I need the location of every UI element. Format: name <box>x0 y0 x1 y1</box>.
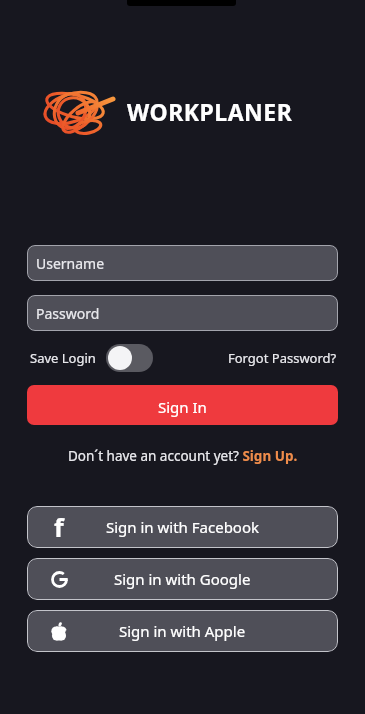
staticText: Username <box>36 254 105 273</box>
button[interactable]: Don´t have an account yet? Sign Up. <box>0 447 365 465</box>
staticText: Sign in with Google <box>114 569 251 589</box>
button[interactable]: f <box>27 506 338 548</box>
button[interactable]: Forgot Password? <box>228 349 337 367</box>
staticText: Password <box>36 304 100 323</box>
button[interactable]: Sign In <box>27 385 338 425</box>
staticText: Sign in with Facebook <box>106 517 260 537</box>
button[interactable]: Sign in with Google <box>27 558 338 600</box>
button[interactable]: Sign in with Apple <box>27 610 338 652</box>
staticText: Sign In <box>158 397 207 417</box>
staticText: f <box>54 510 64 544</box>
staticText: Sign in with Apple <box>119 621 246 641</box>
button[interactable]: Password <box>27 295 338 331</box>
button[interactable]: Username <box>27 245 338 281</box>
staticText: Save Login <box>30 349 96 367</box>
staticText: WORKPLANER <box>127 96 293 127</box>
staticText: Don´t have an account yet? Sign Up. <box>68 447 298 465</box>
button[interactable] <box>106 344 153 372</box>
